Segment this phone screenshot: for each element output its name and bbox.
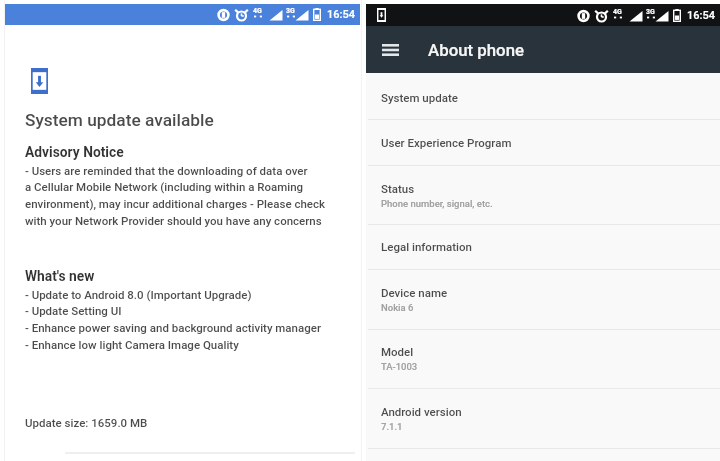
staticText: 16:54	[327, 8, 355, 21]
button[interactable]: Device name	[366, 269, 720, 329]
staticText: - Update to Android 8.0 (Important Upgra…	[25, 288, 321, 352]
button[interactable]: Status	[366, 165, 720, 225]
button[interactable]: Model	[366, 329, 720, 388]
staticText: System update available	[25, 110, 214, 130]
staticText: Update size: 1659.0 MB	[25, 416, 148, 429]
staticText: 4G	[613, 8, 622, 16]
staticText: System update	[381, 91, 458, 104]
staticText: Legal information	[381, 240, 472, 253]
staticText: User Experience Program	[381, 136, 512, 149]
staticText: - Users are reminded that the downloadin…	[25, 164, 326, 228]
staticText: Status	[381, 182, 415, 195]
staticText: Device name	[381, 286, 448, 299]
button[interactable]: Open navigation menu	[366, 26, 415, 73]
staticText: Phone number, signal, etc.	[381, 198, 493, 209]
staticText: 16:54	[687, 9, 715, 22]
button[interactable]: Legal information	[366, 224, 720, 269]
button[interactable]: User Experience Program	[366, 119, 720, 165]
staticText: 4G	[253, 7, 262, 15]
button[interactable]: Android version	[366, 388, 720, 448]
staticText: Advisory Notice	[25, 144, 124, 160]
staticText: Nokia 6	[381, 302, 414, 313]
staticText: 3G	[286, 7, 295, 15]
staticText: What's new	[25, 268, 95, 284]
staticText: 3G	[646, 8, 655, 16]
staticText: TA-1003	[381, 361, 418, 372]
staticText: Model	[381, 345, 414, 358]
staticText: About phone	[428, 40, 525, 60]
staticText: 7.1.1	[381, 421, 403, 432]
staticText: Android version	[381, 405, 462, 418]
button[interactable]: System update	[366, 74, 720, 120]
